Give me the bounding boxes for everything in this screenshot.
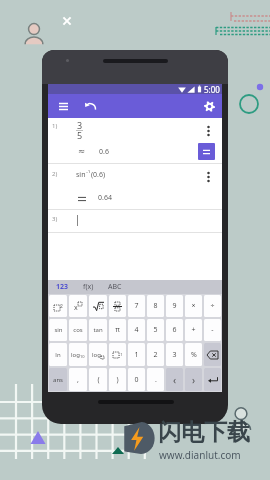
staticText: ln [55, 351, 61, 359]
staticText: ≈ [78, 146, 86, 156]
button[interactable]: Key ans [49, 368, 67, 391]
button[interactable]: Key rt [89, 295, 107, 317]
staticText: 1 [134, 350, 139, 360]
staticText: 2) [52, 170, 58, 178]
staticText: 0 [134, 375, 139, 385]
button[interactable]: Undo [81, 97, 99, 115]
staticText: 0.6 [99, 147, 109, 157]
button[interactable]: 123 [56, 282, 69, 292]
staticText: + [191, 325, 196, 335]
button[interactable]: Key ) [109, 368, 126, 391]
staticText: ‹ [173, 373, 177, 387]
button[interactable]: Key 0 [128, 368, 145, 391]
staticText: ÷ [210, 301, 215, 311]
staticText: 1) [52, 122, 58, 130]
button[interactable]: Key pw1 [109, 343, 126, 366]
staticText: ( [97, 375, 100, 385]
button[interactable]: Key 1 [128, 343, 145, 366]
staticText: 3 [172, 350, 177, 360]
staticText: 6 [172, 325, 177, 335]
button[interactable]: ABC [108, 282, 122, 292]
staticText: 闪电下载 [158, 418, 250, 447]
staticText: sin [54, 326, 63, 334]
button[interactable]: Key pw [69, 295, 87, 317]
button[interactable]: Key % [185, 343, 202, 366]
button[interactable]: Key 9 [166, 295, 183, 317]
staticText: . [155, 375, 157, 385]
button[interactable]: Key 3 [166, 343, 183, 366]
staticText: ⁻¹ [86, 170, 91, 178]
staticText: sin [76, 170, 86, 180]
button[interactable]: 3) [48, 210, 222, 232]
staticText: 8 [153, 301, 158, 311]
staticText: tan [93, 326, 103, 334]
button[interactable]: Key ÷ [204, 295, 221, 317]
button[interactable]: Key 6 [166, 319, 183, 341]
staticText: 2 [153, 350, 158, 360]
button[interactable]: Key log [89, 343, 107, 366]
button[interactable]: Key 5 [147, 319, 164, 341]
button[interactable]: 2) [48, 164, 222, 209]
button[interactable]: Key 4 [128, 319, 145, 341]
button[interactable]: Key cos [69, 319, 87, 341]
staticText: % [191, 350, 197, 360]
staticText: 10 [80, 354, 85, 359]
button[interactable]: Key ( [89, 368, 107, 391]
staticText: -1 [119, 352, 123, 357]
staticText: cos [73, 326, 83, 334]
button[interactable]: 1) [48, 118, 222, 163]
button[interactable]: Key - [204, 319, 221, 341]
button[interactable]: Key ent [204, 368, 221, 391]
staticText: ) [116, 375, 119, 385]
staticText: 4 [134, 325, 139, 335]
staticText: 2 [60, 303, 63, 310]
button[interactable]: Key ln [49, 343, 67, 366]
button[interactable]: Key del [204, 343, 221, 366]
button[interactable]: f(x) [83, 282, 94, 292]
staticText: (0.6) [91, 170, 106, 180]
staticText: 3 [77, 119, 83, 131]
staticText: x [74, 303, 78, 313]
button[interactable]: Key 8 [147, 295, 164, 317]
staticText: log [92, 351, 101, 359]
staticText: › [192, 373, 196, 387]
staticText: - [211, 325, 214, 335]
staticText: 5 [77, 129, 83, 141]
button[interactable]: Key . [147, 368, 164, 391]
button[interactable]: Key + [185, 319, 202, 341]
staticText: × [191, 301, 196, 311]
button[interactable]: Key 7 [128, 295, 145, 317]
button[interactable]: Key > [185, 368, 202, 391]
button[interactable]: Key , [69, 368, 87, 391]
button[interactable]: Key < [166, 368, 183, 391]
button[interactable]: Key sq [49, 295, 67, 317]
staticText: 3) [52, 215, 58, 223]
staticText: 5:00 [204, 84, 220, 94]
staticText: 0.64 [98, 193, 112, 203]
button[interactable]: Key log10 [69, 343, 87, 366]
button[interactable]: Key tan [89, 319, 107, 341]
button[interactable]: Menu [54, 97, 72, 115]
staticText: ans [53, 376, 63, 384]
staticText: , [77, 375, 79, 385]
button[interactable]: Settings [200, 97, 218, 115]
button[interactable]: Key π [109, 319, 126, 341]
button[interactable]: Key fr [109, 295, 126, 317]
button[interactable]: Equals [198, 143, 215, 160]
button[interactable]: Key × [185, 295, 202, 317]
button[interactable]: Key 2 [147, 343, 164, 366]
staticText: log [71, 351, 80, 359]
staticText: π [115, 325, 120, 335]
staticText: 7 [134, 301, 139, 311]
button[interactable]: Key sin [49, 319, 67, 341]
staticText: 5 [153, 325, 158, 335]
staticText: www.dianlut.com [159, 448, 241, 462]
staticText: 9 [172, 301, 177, 311]
